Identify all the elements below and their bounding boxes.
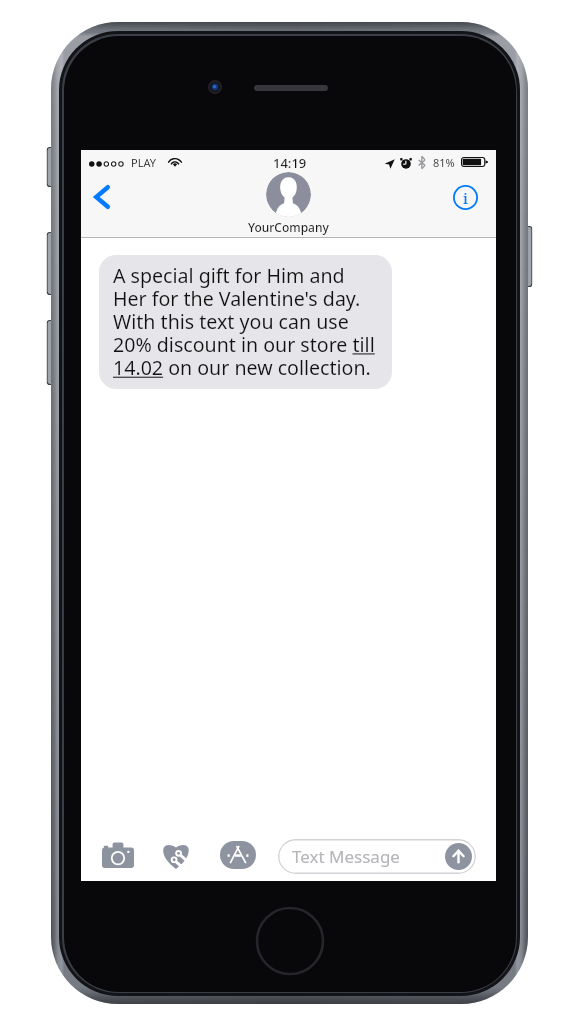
button[interactable]: Text Message xyxy=(278,839,476,874)
button[interactable]: Send xyxy=(445,843,472,870)
staticText: YourCompany xyxy=(248,219,329,235)
staticText: 14:19 xyxy=(273,154,307,172)
button[interactable]: Camera xyxy=(101,841,134,869)
button[interactable]: A special gift for Him and Her for the V… xyxy=(99,255,392,389)
button[interactable]: Info xyxy=(448,180,483,215)
staticText: A special gift for Him and Her for the V… xyxy=(113,262,375,381)
button[interactable]: App Store xyxy=(219,840,257,870)
button[interactable]: Digital Touch xyxy=(159,840,192,870)
staticText: 81% xyxy=(433,155,455,170)
staticText: PLAY xyxy=(131,155,157,170)
staticText: Text Message xyxy=(292,845,400,868)
button[interactable]: Contact avatar xyxy=(266,172,311,217)
staticText: i xyxy=(463,188,468,208)
button[interactable]: Back xyxy=(82,177,122,217)
